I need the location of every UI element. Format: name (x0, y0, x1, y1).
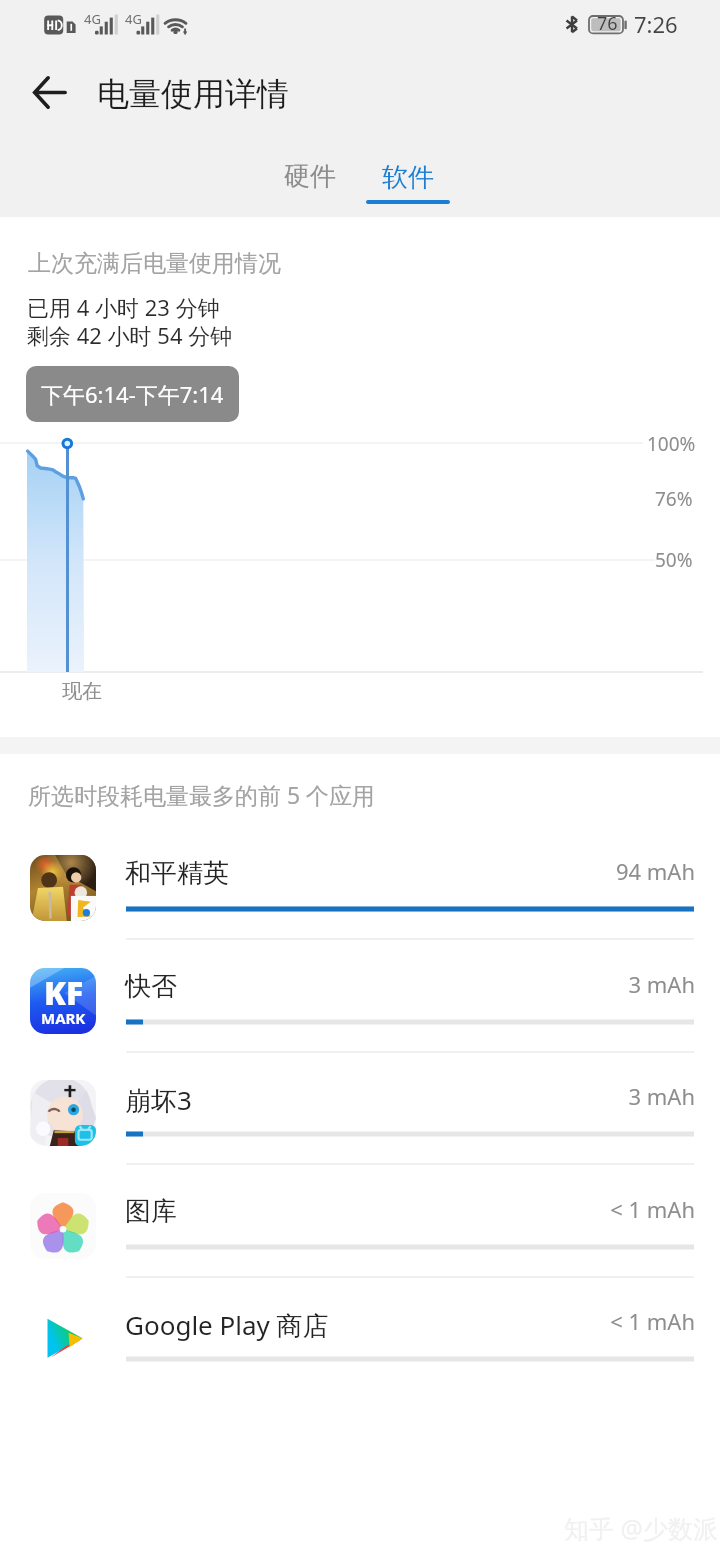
staticText: 剩余 42 小时 54 分钟 (27, 320, 233, 350)
staticText: 和平精英 (125, 857, 229, 890)
staticText: 3 mAh (0, 1081, 695, 1111)
staticText: 已用 4 小时 23 分钟 (27, 292, 220, 322)
staticText: 上次充满后电量使用情况 (28, 249, 281, 278)
staticText: KF (44, 971, 84, 1015)
staticText: 所选时段耗电量最多的前 5 个应用 (28, 779, 376, 810)
button[interactable]: 电量使用详情 (97, 74, 289, 114)
button[interactable]: Back (12, 55, 86, 129)
staticText: < 1 mAh (0, 1194, 695, 1224)
button[interactable]: 和平精英 (0, 825, 720, 938)
button[interactable]: 下午6:14-下午7:14 (26, 366, 239, 422)
staticText: 下午6:14-下午7:14 (41, 379, 224, 409)
staticText: 76 (597, 11, 618, 36)
staticText: 图库 (125, 1195, 177, 1228)
button[interactable]: 软件 (362, 146, 454, 206)
button[interactable]: 图库 (0, 1163, 720, 1276)
staticText: 100% (647, 431, 696, 457)
staticText: 电量使用详情 (97, 74, 289, 114)
staticText: 76% (655, 486, 693, 512)
button[interactable]: 硬件 (264, 146, 356, 206)
staticText: 4G (125, 10, 142, 28)
staticText: 知乎 @少数派 (564, 1511, 718, 1545)
staticText: < 1 mAh (0, 1306, 695, 1336)
staticText: 快否 (125, 970, 177, 1003)
staticText: 50% (655, 547, 693, 573)
staticText: 4G (84, 10, 101, 28)
button[interactable]: Google Play 商店 (0, 1275, 720, 1388)
staticText: Google Play 商店 (125, 1307, 329, 1343)
button[interactable]: KF (0, 938, 720, 1051)
staticText: 软件 (382, 161, 434, 194)
staticText: 94 mAh (0, 856, 695, 886)
staticText: 现在 (62, 679, 102, 704)
staticText: 崩坏3 (125, 1082, 192, 1118)
button[interactable]: 崩坏3 (0, 1050, 720, 1163)
staticText: MARK (41, 1008, 86, 1028)
staticText: 硬件 (284, 160, 336, 193)
staticText: 3 mAh (0, 969, 695, 999)
staticText: 7:26 (634, 9, 678, 39)
